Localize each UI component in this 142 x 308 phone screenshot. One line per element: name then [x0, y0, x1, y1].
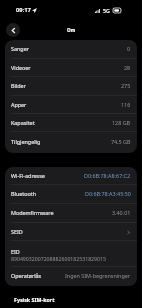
staticText: Modemfirmware [11, 209, 54, 216]
button[interactable]: Videoer [5, 59, 137, 77]
staticText: EID [11, 248, 20, 255]
staticText: Fysisk SIM-kort [14, 296, 55, 303]
button[interactable]: EID [5, 241, 137, 267]
staticText: D0:6B:78:A3:45:50 [85, 190, 131, 197]
staticText: 116 [121, 101, 131, 108]
staticText: Operatørlås [11, 272, 42, 279]
button[interactable]: SEID [5, 223, 137, 241]
staticText: 28 [124, 64, 131, 71]
staticText: Om [67, 27, 76, 33]
staticText: 0 [127, 45, 131, 52]
button[interactable]: Wi-Fi-adresse [5, 167, 137, 185]
staticText: 3.40.01 [112, 209, 131, 216]
button[interactable]: Operatørlås [5, 267, 137, 286]
button[interactable]: Bluetooth [5, 185, 137, 204]
staticText: SEID [11, 228, 23, 235]
staticText: Videoer [11, 64, 31, 71]
button[interactable]: Bilder [5, 77, 137, 96]
button[interactable]: Tilgjengelig [5, 132, 137, 153]
staticText: 74,5 GB [111, 138, 131, 145]
staticText: Bluetooth [11, 190, 37, 197]
staticText: 5G [103, 7, 110, 14]
button[interactable]: Fysisk SIM-kort [0, 296, 142, 303]
staticText: 128 GB [112, 119, 131, 126]
staticText: Kapasitet [11, 119, 35, 126]
button[interactable]: Back [6, 23, 20, 37]
staticText: Apper [11, 101, 27, 108]
button[interactable]: Sanger [5, 40, 137, 59]
staticText: Tilgjengelig [11, 138, 41, 145]
button[interactable]: Apper [5, 96, 137, 114]
staticText: 275 [121, 82, 131, 89]
staticText: Sanger [11, 45, 29, 52]
staticText: Bilder [11, 82, 26, 89]
staticText: Wi-Fi-adresse [11, 172, 45, 179]
staticText: D0:6B:78:A8:67:C2 [84, 172, 131, 179]
staticText: 09:17 [16, 6, 31, 14]
button[interactable]: Kapasitet [5, 114, 137, 132]
staticText: Ingen SIM-begrensninger [65, 272, 131, 279]
button[interactable]: Modemfirmware [5, 204, 137, 223]
staticText: 89049032007208882600182531829015 [11, 255, 106, 262]
